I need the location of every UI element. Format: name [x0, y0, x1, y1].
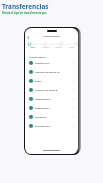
staticText: Cuentas pro: [35, 61, 50, 64]
button[interactable]: Datos: [65, 46, 78, 49]
staticText: Expre: [35, 79, 42, 82]
button[interactable]: Mercado de c: [25, 121, 78, 130]
staticText: Transferencias: [29, 56, 46, 59]
staticText: Internaciona: [35, 97, 51, 100]
staticText: Datos: [69, 46, 75, 49]
staticText: Tipo: [30, 46, 35, 49]
button[interactable]: Tipo: [25, 46, 39, 49]
staticText: Mercado de c: [35, 124, 51, 127]
staticText: Donacion: [35, 115, 47, 118]
staticText: Monto: [55, 46, 62, 49]
staticText: Regionales S: [35, 106, 50, 109]
button[interactable]: Destino: [39, 46, 52, 49]
button[interactable]: Regionales S: [25, 103, 78, 112]
button[interactable]: Monto: [52, 46, 65, 49]
staticText: Revisá el tipo de transferencia que: [2, 11, 47, 15]
button[interactable]: Cuentas pro: [25, 58, 78, 67]
staticText: Transferencias: [2, 2, 49, 11]
staticText: Cuentas en otros B: [35, 88, 58, 91]
button[interactable]: Back: [26, 35, 30, 39]
button[interactable]: Cuentas en Banco Sa: [25, 67, 78, 76]
staticText: Destino: [42, 46, 50, 49]
staticText: Transferencias: [43, 35, 60, 38]
button[interactable]: Expre: [25, 76, 78, 85]
button[interactable]: Donacion: [25, 112, 78, 121]
staticText: Cuentas en Banco Sa: [35, 70, 60, 73]
button[interactable]: Internaciona: [25, 94, 78, 103]
button[interactable]: Cuentas en otros B: [25, 85, 78, 94]
